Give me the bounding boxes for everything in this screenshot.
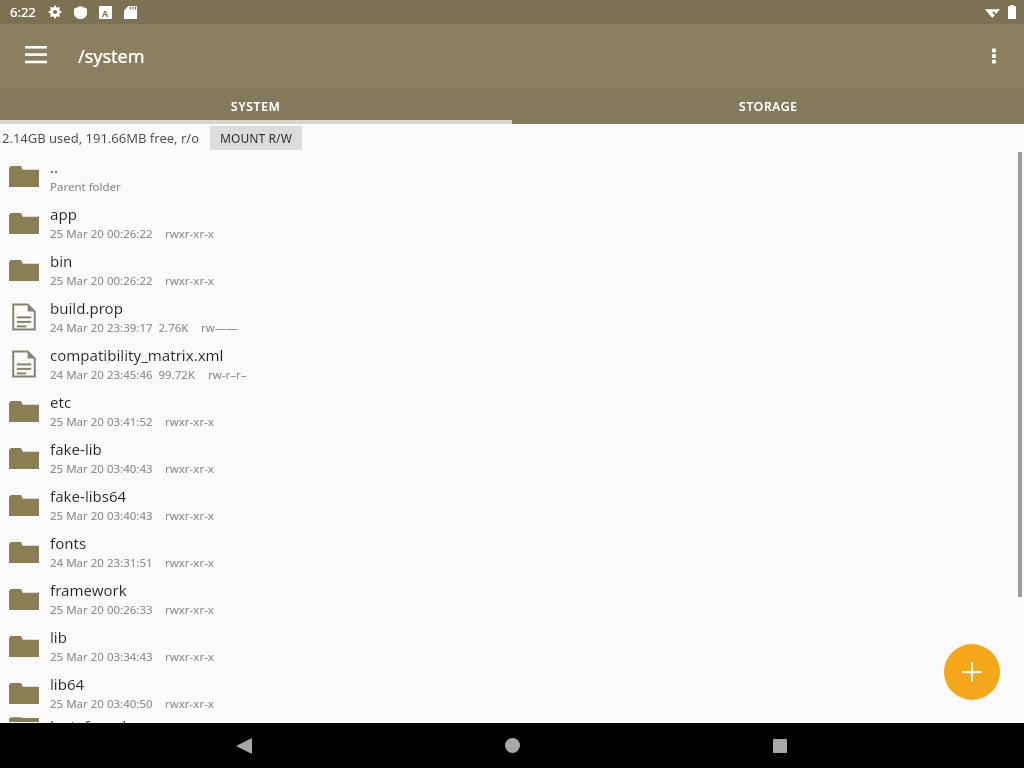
staticText: A bbox=[102, 7, 109, 19]
button[interactable]: lib64 bbox=[0, 669, 1024, 716]
button[interactable]: STORAGE bbox=[512, 88, 1024, 124]
staticText: rwxr-xr-x bbox=[165, 696, 214, 712]
staticText: rwxr-xr-x bbox=[165, 649, 214, 665]
staticText: 25 Mar 20 03:41:52 bbox=[50, 414, 153, 430]
staticText: fake-libs64 bbox=[50, 486, 127, 506]
staticText: rwxr-xr-x bbox=[165, 461, 214, 477]
button[interactable]: build.prop bbox=[0, 293, 1024, 340]
staticText: .. bbox=[50, 157, 59, 177]
staticText: rwxr-xr-x bbox=[165, 602, 214, 618]
button[interactable]: Back bbox=[220, 723, 268, 768]
button[interactable]: Recents bbox=[756, 723, 804, 768]
staticText: 6:22 bbox=[10, 3, 36, 21]
button[interactable]: etc bbox=[0, 387, 1024, 434]
button[interactable]: compatibility_matrix.xml bbox=[0, 340, 1024, 387]
button[interactable]: fake-lib bbox=[0, 434, 1024, 481]
staticText: 24 Mar 20 23:39:17 2.76K bbox=[50, 320, 189, 336]
staticText: 25 Mar 20 03:40:43 bbox=[50, 461, 153, 477]
staticText: STORAGE bbox=[739, 98, 798, 114]
staticText: 24 Mar 20 23:31:51 bbox=[50, 555, 153, 571]
staticText: SYSTEM bbox=[231, 98, 281, 114]
staticText: rw-r–r– bbox=[208, 367, 247, 383]
staticText: rw—— bbox=[201, 320, 238, 336]
staticText: lost+found bbox=[50, 716, 127, 723]
button[interactable]: fonts bbox=[0, 528, 1024, 575]
staticText: fake-lib bbox=[50, 439, 102, 459]
staticText: 25 Mar 20 03:40:50 bbox=[50, 696, 153, 712]
staticText: /system bbox=[78, 44, 145, 69]
button[interactable]: lost+found bbox=[0, 716, 1024, 723]
button[interactable]: Home bbox=[488, 723, 536, 768]
staticText: fonts bbox=[50, 533, 87, 553]
button[interactable]: Open navigation drawer bbox=[12, 32, 60, 80]
button[interactable]: More options bbox=[970, 32, 1018, 80]
staticText: 25 Mar 20 03:34:43 bbox=[50, 649, 153, 665]
staticText: 25 Mar 20 00:26:33 bbox=[50, 602, 153, 618]
button[interactable]: Add bbox=[944, 644, 1000, 700]
staticText: rwxr-xr-x bbox=[165, 273, 214, 289]
button[interactable]: .. bbox=[0, 152, 1024, 199]
staticText: lib bbox=[50, 627, 67, 647]
staticText: framework bbox=[50, 580, 127, 600]
staticText: MOUNT R/W bbox=[220, 130, 292, 146]
staticText: etc bbox=[50, 392, 72, 412]
staticText: 25 Mar 20 00:26:22 bbox=[50, 226, 153, 242]
staticText: rwxr-xr-x bbox=[165, 555, 214, 571]
button[interactable]: fake-libs64 bbox=[0, 481, 1024, 528]
button[interactable]: SYSTEM bbox=[0, 88, 512, 124]
button[interactable]: lib bbox=[0, 622, 1024, 669]
staticText: 25 Mar 20 03:40:43 bbox=[50, 508, 153, 524]
staticText: rwxr-xr-x bbox=[165, 226, 214, 242]
button[interactable]: app bbox=[0, 199, 1024, 246]
staticText: rwxr-xr-x bbox=[165, 414, 214, 430]
staticText: rwxr-xr-x bbox=[165, 508, 214, 524]
staticText: Parent folder bbox=[50, 179, 121, 195]
staticText: 25 Mar 20 00:26:22 bbox=[50, 273, 153, 289]
staticText: app bbox=[50, 204, 77, 224]
staticText: bin bbox=[50, 251, 73, 271]
staticText: lib64 bbox=[50, 674, 85, 694]
button[interactable]: bin bbox=[0, 246, 1024, 293]
button[interactable]: MOUNT R/W bbox=[210, 126, 302, 150]
staticText: build.prop bbox=[50, 298, 123, 318]
staticText: 2.14GB used, 191.66MB free, r/o bbox=[2, 129, 200, 147]
staticText: 24 Mar 20 23:45:46 99.72K bbox=[50, 367, 196, 383]
button[interactable]: framework bbox=[0, 575, 1024, 622]
staticText: compatibility_matrix.xml bbox=[50, 345, 224, 365]
